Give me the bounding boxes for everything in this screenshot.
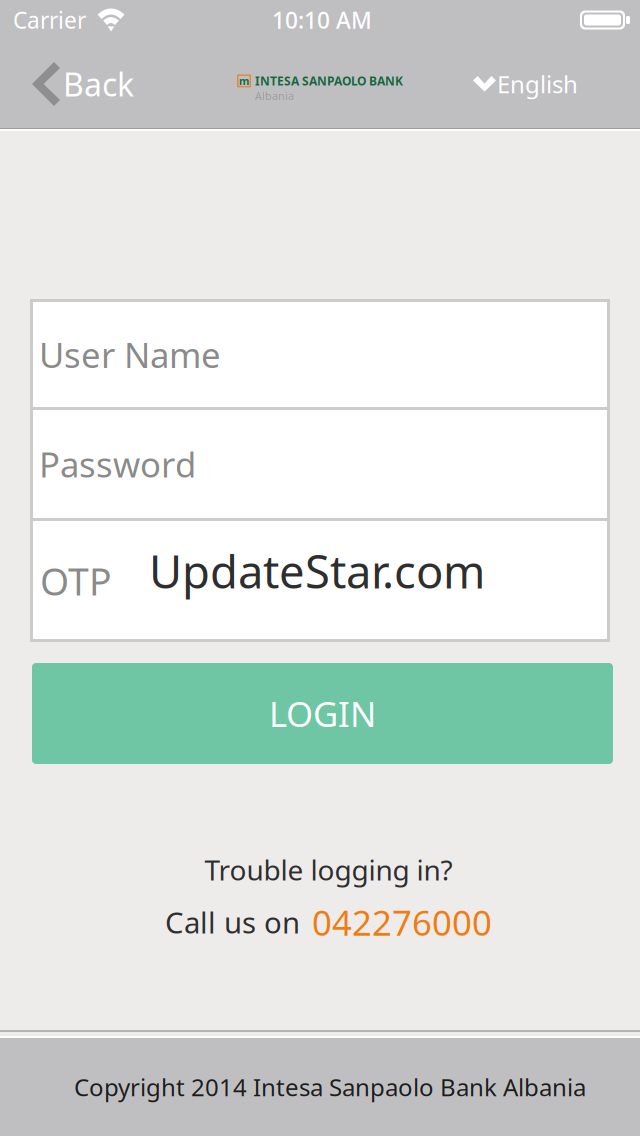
staticText: INTESA SANPAOLO BANK [255, 73, 403, 89]
staticText: Trouble logging in? [204, 851, 452, 888]
staticText: 10:10 AM [272, 5, 372, 35]
staticText: Carrier [13, 5, 86, 35]
staticText: OTP [40, 556, 112, 606]
button[interactable]: 042276000 [312, 899, 492, 945]
staticText: Password [39, 441, 196, 487]
staticText: 042276000 [312, 899, 492, 945]
button[interactable]: Password [33, 410, 607, 518]
button[interactable]: OTP [33, 521, 607, 639]
staticText: LOGIN [269, 690, 376, 736]
button[interactable]: LOGIN [32, 663, 613, 764]
staticText: Copyright 2014 Intesa Sanpaolo Bank Alba… [74, 1071, 586, 1103]
staticText: Call us on [165, 903, 300, 942]
button[interactable]: Back [0, 40, 144, 128]
staticText: User Name [39, 331, 221, 377]
staticText: Albania [255, 89, 294, 103]
staticText: Back [63, 63, 134, 105]
staticText: UpdateStar.com [149, 541, 485, 601]
button[interactable]: English [463, 40, 640, 128]
staticText: English [497, 68, 578, 100]
staticText: m [239, 74, 249, 88]
button[interactable]: User Name [33, 302, 607, 407]
